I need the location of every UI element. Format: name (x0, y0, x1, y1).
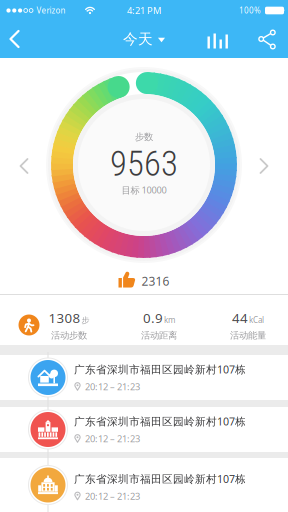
staticText: Verizon (37, 5, 66, 16)
button[interactable]: History (207, 30, 228, 48)
staticText: 活动能量 (230, 330, 266, 341)
button[interactable]: Previous day (20, 159, 28, 173)
staticText: 0.9 (143, 309, 163, 327)
staticText: 广东省深圳市福田区园岭新村107栋 (74, 362, 246, 376)
staticText: 今天 (123, 30, 153, 48)
staticText: 目标 10000 (121, 184, 166, 196)
button[interactable]: Likes (118, 273, 169, 289)
staticText: 44 (232, 309, 248, 327)
button[interactable]: Select day (123, 30, 165, 48)
button[interactable]: Next day (260, 159, 268, 173)
button[interactable]: 广东省深圳市福田区园岭新村107栋 (0, 355, 288, 400)
staticText: 广东省深圳市福田区园岭新村107栋 (74, 472, 246, 486)
staticText: 20:12 – 21:23 (85, 490, 140, 502)
staticText: kCal (249, 314, 264, 325)
staticText: 活动距离 (141, 330, 177, 341)
staticText: 活动步数 (51, 330, 87, 341)
staticText: 100% (239, 5, 261, 16)
button[interactable]: 广东省深圳市福田区园岭新村107栋 (0, 458, 288, 512)
button[interactable]: Back (2, 20, 28, 58)
staticText: 9563 (110, 144, 178, 184)
staticText: 4:21 PM (127, 4, 161, 17)
button[interactable]: Share (258, 30, 276, 49)
staticText: 20:12 – 21:23 (85, 432, 140, 445)
staticText: km (164, 314, 175, 325)
staticText: 广东省深圳市福田区园岭新村107栋 (74, 414, 246, 428)
staticText: 步数 (135, 131, 153, 143)
staticText: 步 (81, 315, 89, 325)
staticText: 2316 (141, 273, 169, 289)
button[interactable]: 广东省深圳市福田区园岭新村107栋 (0, 407, 288, 452)
staticText: 1308 (48, 309, 80, 327)
staticText: 20:12 – 21:23 (85, 380, 140, 393)
